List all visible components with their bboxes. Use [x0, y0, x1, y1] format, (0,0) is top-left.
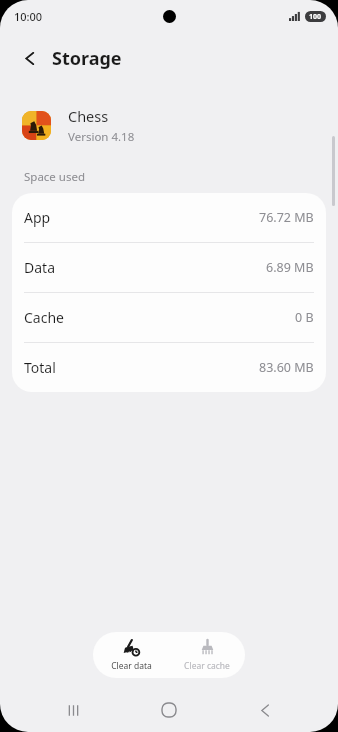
staticText: Storage [52, 46, 122, 71]
button[interactable]: App [12, 193, 326, 242]
staticText: Total [24, 358, 56, 377]
staticText: 100 [309, 12, 322, 22]
staticText: 6.89 MB [266, 259, 314, 276]
button[interactable]: Recents [50, 688, 96, 732]
staticText: App [24, 208, 51, 227]
staticText: Cache [24, 308, 64, 327]
button[interactable]: Data [12, 243, 326, 292]
staticText: Clear data [111, 660, 152, 672]
button[interactable]: Total [12, 343, 326, 392]
staticText: 83.60 MB [259, 359, 314, 376]
staticText: 10:00 [14, 9, 43, 24]
staticText: Chess [68, 106, 109, 126]
staticText: Data [24, 258, 55, 277]
button[interactable]: Home [146, 688, 192, 732]
staticText: Space used [24, 169, 86, 185]
button: Clear cache [169, 632, 245, 678]
button[interactable]: Back [14, 42, 46, 74]
staticText: Clear cache [184, 660, 230, 672]
button[interactable]: Back [242, 688, 288, 732]
staticText: 0 B [295, 309, 314, 326]
staticText: 76.72 MB [259, 209, 314, 226]
button[interactable]: Cache [12, 293, 326, 342]
button[interactable]: Clear data [93, 632, 169, 678]
staticText: Version 4.18 [68, 129, 135, 145]
